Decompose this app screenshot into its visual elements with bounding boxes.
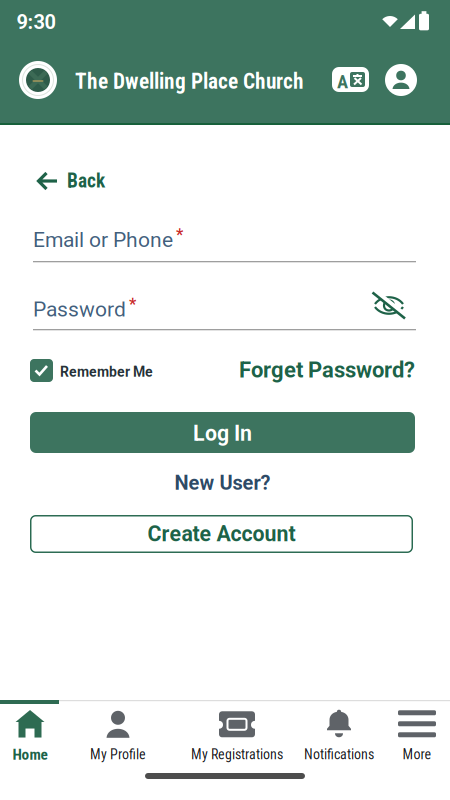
button[interactable]: Remember Me <box>30 359 153 382</box>
staticText: 9:30 <box>16 10 55 34</box>
staticText: Remember Me <box>60 364 153 380</box>
button[interactable]: Translate <box>332 67 369 92</box>
staticText: New User? <box>174 471 270 495</box>
staticText: A <box>337 71 348 93</box>
button[interactable]: Show password <box>370 290 407 320</box>
staticText: Notifications <box>304 746 374 763</box>
button[interactable]: Home <box>0 709 90 763</box>
staticText: * <box>129 295 136 314</box>
staticText: Back <box>67 170 105 192</box>
button[interactable]: More <box>357 709 450 763</box>
button[interactable]: My Profile <box>58 709 178 763</box>
staticText: My Registrations <box>191 746 283 763</box>
staticText: My Profile <box>90 746 146 763</box>
staticText: Email or Phone <box>33 227 173 252</box>
staticText: Log In <box>193 421 252 446</box>
staticText: More <box>402 746 431 763</box>
staticText: The Dwelling Place Church <box>75 69 304 94</box>
button[interactable]: Notifications <box>279 709 399 763</box>
button[interactable]: New User? <box>160 470 285 496</box>
button[interactable]: Create Account <box>30 515 413 553</box>
staticText: Create Account <box>147 521 295 546</box>
button[interactable]: Profile <box>385 64 417 96</box>
staticText: Forget Password? <box>239 357 415 383</box>
staticText: Home <box>12 745 47 763</box>
button[interactable]: Log In <box>30 412 415 453</box>
button[interactable]: Forget Password? <box>238 357 415 383</box>
staticText: Password <box>33 297 126 322</box>
button[interactable]: My Registrations <box>177 709 297 763</box>
staticText: * <box>176 225 183 244</box>
button[interactable]: Back <box>30 166 111 196</box>
